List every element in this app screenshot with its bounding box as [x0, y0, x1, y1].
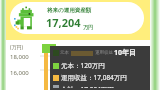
staticText: 元本	[60, 50, 69, 56]
staticText: 万円	[83, 24, 93, 30]
staticText: 合計：17,204万円	[61, 85, 114, 88]
staticText: 17,204	[46, 15, 81, 30]
button[interactable]: 運用資産額の内訳ツールチップ	[53, 48, 147, 88]
staticText: 元本：120万円	[61, 61, 105, 70]
button[interactable]: 将来の運用資産額	[10, 2, 144, 34]
staticText: 運用収益：17,084万円	[61, 73, 127, 82]
staticText: 将来の運用資産額	[47, 7, 92, 14]
staticText: 18,000	[10, 53, 29, 61]
staticText: 運用収益	[95, 50, 113, 56]
staticText: 16,000	[10, 69, 29, 77]
staticText: (万円)	[10, 44, 24, 51]
staticText: 10年目	[114, 48, 137, 58]
